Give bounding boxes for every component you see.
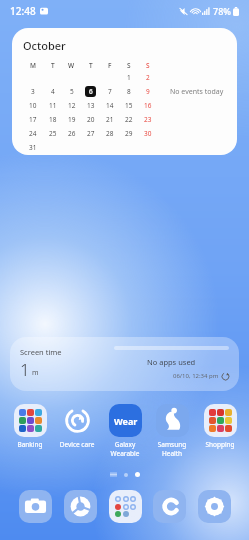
staticText: T: [51, 61, 55, 70]
staticText: 25: [49, 129, 57, 138]
staticText: 4: [51, 87, 55, 96]
button[interactable]: Screen time: [10, 337, 239, 391]
staticText: 27: [87, 129, 95, 138]
button[interactable]: Chrome: [62, 488, 98, 524]
staticText: 30: [144, 129, 152, 138]
staticText: 1: [127, 73, 131, 82]
staticText: 10: [29, 101, 37, 110]
button[interactable]: Device care: [54, 403, 100, 450]
staticText: 17: [29, 115, 37, 124]
staticText: T: [89, 61, 93, 70]
staticText: M: [30, 61, 36, 70]
staticText: 29: [125, 129, 133, 138]
staticText: 2: [146, 73, 150, 82]
button[interactable]: Apps: [107, 488, 143, 524]
staticText: Screen time: [20, 347, 62, 357]
staticText: 1: [20, 358, 30, 381]
staticText: 28: [106, 129, 114, 138]
staticText: 24: [29, 129, 37, 138]
button[interactable]: Phone: [151, 488, 187, 524]
staticText: 13: [87, 101, 95, 110]
staticText: 12:48: [10, 4, 36, 18]
staticText: 31: [29, 143, 37, 152]
button[interactable]: Banking: [7, 403, 53, 450]
staticText: 20: [87, 115, 95, 124]
staticText: Shopping: [197, 440, 243, 449]
staticText: 16: [144, 101, 152, 110]
staticText: 14: [106, 101, 114, 110]
staticText: 06/10, 12:34 pm: [173, 372, 219, 380]
staticText: m: [32, 368, 39, 378]
staticText: 9: [146, 87, 150, 96]
staticText: No events today: [170, 87, 224, 97]
button[interactable]: Settings: [196, 488, 232, 524]
staticText: 21: [106, 115, 114, 124]
staticText: Samsung Health: [149, 440, 195, 458]
staticText: Galaxy Wearable: [102, 440, 148, 458]
staticText: W: [68, 61, 75, 70]
staticText: 23: [144, 115, 152, 124]
button[interactable]: Shopping: [197, 403, 243, 450]
staticText: S: [127, 61, 131, 70]
staticText: 8: [127, 87, 131, 96]
staticText: No apps used: [147, 357, 196, 367]
staticText: 11: [49, 101, 57, 110]
staticText: S: [146, 61, 150, 70]
staticText: 12: [68, 101, 76, 110]
staticText: 3: [31, 87, 35, 96]
staticText: Wear: [114, 415, 138, 427]
button[interactable]: October: [12, 28, 237, 155]
staticText: 7: [108, 87, 112, 96]
staticText: 6: [89, 87, 93, 96]
staticText: 22: [125, 115, 133, 124]
staticText: 26: [68, 129, 76, 138]
staticText: Device care: [54, 440, 100, 449]
button[interactable]: Wear: [102, 403, 148, 459]
staticText: Banking: [7, 440, 53, 449]
staticText: October: [23, 38, 66, 53]
button[interactable]: Camera: [17, 488, 53, 524]
staticText: 5: [70, 87, 74, 96]
staticText: 78%: [213, 5, 231, 17]
staticText: 18: [49, 115, 57, 124]
staticText: 15: [125, 101, 133, 110]
staticText: 19: [68, 115, 76, 124]
staticText: F: [108, 61, 112, 70]
button[interactable]: Samsung Health: [149, 403, 195, 459]
